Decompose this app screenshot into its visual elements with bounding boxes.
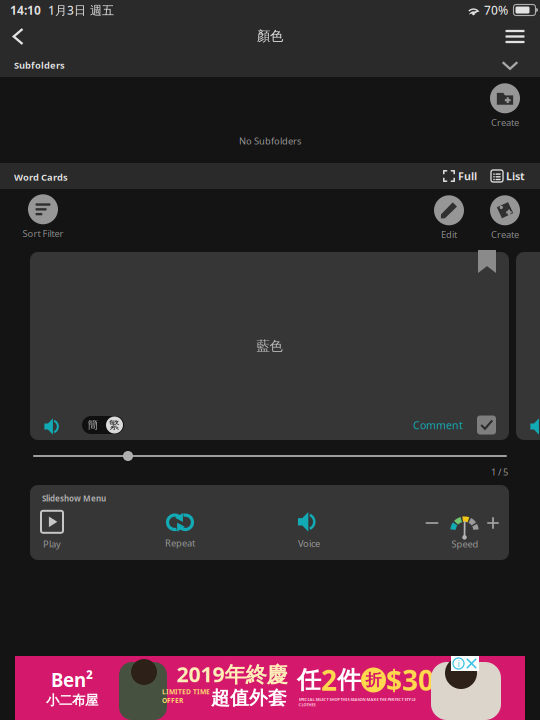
staticText: Edit: [441, 228, 457, 241]
button[interactable]: Sort Filter: [12, 195, 74, 239]
staticText: $300: [386, 661, 450, 699]
staticText: Sort Filter: [22, 227, 63, 240]
staticText: Speed: [451, 538, 478, 550]
staticText: 簡: [87, 418, 98, 431]
button[interactable]: Collapse subfolders: [492, 60, 528, 71]
button[interactable]: List: [489, 168, 527, 184]
staticText: Comment: [413, 418, 463, 432]
staticText: 2: [321, 661, 337, 699]
button[interactable]: Voice: [287, 510, 331, 550]
staticText: LIMITED TIME OFFER: [162, 687, 210, 705]
staticText: Play: [43, 538, 61, 550]
staticText: Word Cards: [14, 171, 68, 183]
button[interactable]: Decrease speed: [423, 517, 441, 529]
button[interactable]: Create: [474, 84, 536, 128]
button[interactable]: Bookmark card: [478, 250, 496, 273]
staticText: 1月3日 週五: [48, 2, 114, 18]
staticText: Full: [458, 169, 477, 183]
staticText: 繁: [109, 418, 120, 431]
staticText: Create: [491, 116, 519, 129]
staticText: i: [457, 657, 459, 670]
staticText: 件: [337, 665, 361, 695]
button[interactable]: Comment: [413, 414, 496, 436]
staticText: 超值外套: [211, 686, 287, 709]
button[interactable]: Play: [30, 511, 74, 550]
staticText: Subfolders: [14, 59, 65, 71]
button[interactable]: Edit: [418, 196, 480, 240]
button[interactable]: Create: [474, 196, 536, 240]
staticText: List: [506, 169, 525, 183]
button[interactable]: Full: [441, 168, 479, 184]
staticText: 小二布屋: [46, 692, 98, 709]
button[interactable]: Repeat: [158, 512, 202, 550]
staticText: 70%: [484, 2, 508, 18]
staticText: Repeat: [165, 537, 195, 549]
button[interactable]: Play pronunciation: [44, 417, 63, 436]
button[interactable]: Advertisement: [15, 656, 525, 720]
staticText: 14:10: [10, 2, 41, 18]
staticText: Voice: [298, 537, 320, 550]
staticText: 顏色: [257, 28, 283, 44]
button[interactable]: Simplified or traditional characters: [82, 416, 124, 434]
staticText: 1 / 5: [491, 466, 508, 478]
staticText: 折: [365, 670, 381, 690]
staticText: 2019年終慶: [176, 660, 287, 688]
button[interactable]: Increase speed: [483, 515, 503, 531]
staticText: SPECIAL SELECT SHOP THIS SEASON MAKE THE…: [298, 697, 415, 707]
staticText: Create: [491, 228, 519, 241]
staticText: 任: [297, 665, 321, 695]
staticText: Slideshow Menu: [42, 493, 106, 504]
staticText: 藍色: [256, 338, 282, 354]
button[interactable]: Play pronunciation: [530, 417, 540, 436]
staticText: Ben²: [51, 667, 93, 692]
staticText: No Subfolders: [239, 135, 301, 147]
button[interactable]: Menu: [497, 29, 533, 44]
button[interactable]: Back: [3, 27, 33, 46]
